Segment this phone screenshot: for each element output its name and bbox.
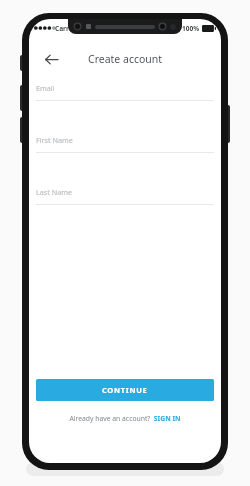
button[interactable]: Last Name bbox=[36, 187, 214, 205]
staticText: First Name bbox=[36, 135, 73, 145]
staticText: 100% bbox=[182, 24, 200, 33]
button[interactable]: CONTINUE bbox=[36, 379, 214, 401]
staticText: Carrier bbox=[55, 24, 78, 33]
staticText: Last Name bbox=[36, 187, 72, 197]
button[interactable]: Back bbox=[39, 47, 63, 71]
staticText: Already have an account? SIGN IN bbox=[69, 414, 181, 423]
staticText: Create account bbox=[88, 52, 163, 66]
staticText: CONTINUE bbox=[102, 385, 148, 395]
button[interactable]: First Name bbox=[36, 135, 214, 153]
staticText: Email bbox=[36, 83, 55, 93]
button[interactable]: Email bbox=[36, 83, 214, 101]
button[interactable]: Already have an account? SIGN IN bbox=[29, 414, 221, 423]
